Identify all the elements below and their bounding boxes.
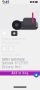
button[interactable]: Photo 2	[11, 31, 17, 36]
button[interactable]: Photo 1	[2, 31, 6, 36]
staticText: Order summary	[2, 58, 24, 61]
staticText: Brand name here	[2, 37, 26, 41]
staticText: 9:41	[2, 0, 9, 5]
button[interactable]: Size option	[2, 46, 7, 52]
staticText: Subtotal $129.00	[2, 62, 28, 65]
button[interactable]: Chat with support	[34, 72, 39, 77]
button[interactable]: Size option	[9, 46, 14, 52]
staticText: Delivery Free	[2, 65, 21, 69]
button[interactable]: Add to bag	[0, 70, 40, 76]
staticText: Add to bag	[11, 71, 28, 75]
